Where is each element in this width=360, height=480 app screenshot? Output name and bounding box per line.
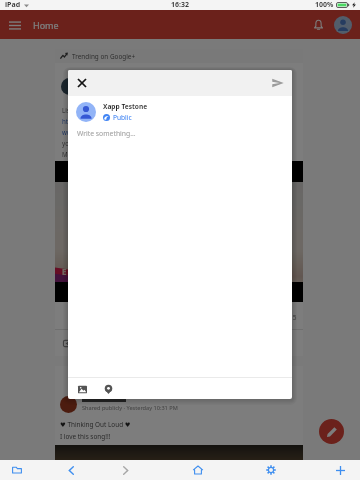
staticText: you can find the whole playlist here and bbox=[62, 139, 178, 147]
staticText: More on the official channel bbox=[62, 150, 144, 158]
button[interactable]: Add photo bbox=[72, 379, 92, 399]
button[interactable]: Add location bbox=[98, 379, 118, 399]
staticText: E bbox=[62, 266, 67, 277]
staticText: www.example.com/album bbox=[62, 128, 138, 136]
button[interactable]: Settings bbox=[256, 460, 286, 480]
staticText: ♥ Thinking Out Loud ♥ bbox=[60, 420, 131, 429]
button[interactable]: Home bbox=[183, 460, 213, 480]
button[interactable]: Forward bbox=[110, 460, 140, 480]
button[interactable]: Bookmarks bbox=[0, 460, 34, 480]
staticText: Trending on Google+ bbox=[72, 52, 136, 61]
staticText: iPad bbox=[5, 0, 21, 10]
staticText: Home bbox=[33, 19, 59, 31]
staticText: Shared publicly · Yesterday 10:31 PM bbox=[82, 404, 178, 412]
staticText: http://www.example.com/watch-the-video bbox=[62, 117, 185, 125]
staticText: 100% bbox=[315, 0, 334, 10]
button[interactable]: Back bbox=[56, 460, 86, 480]
button[interactable]: Close bbox=[72, 73, 92, 93]
staticText: Write something... bbox=[77, 129, 136, 138]
staticText: 15 bbox=[289, 313, 297, 322]
staticText: 16:32 bbox=[171, 0, 189, 10]
button[interactable]: Notifications bbox=[307, 14, 329, 36]
staticText: Listen to the new single from the album bbox=[62, 106, 178, 114]
button[interactable]: Account profile bbox=[334, 16, 352, 34]
button[interactable]: New tab bbox=[325, 460, 355, 480]
button[interactable]: Open navigation menu bbox=[4, 14, 26, 36]
button[interactable]: Plus one bbox=[60, 336, 74, 350]
staticText: Public bbox=[113, 113, 132, 122]
button[interactable]: Create new post bbox=[319, 419, 344, 444]
staticText: I love this song!!! bbox=[60, 432, 111, 441]
button[interactable]: Send post bbox=[268, 73, 288, 93]
staticText: Xapp Testone bbox=[103, 102, 148, 111]
